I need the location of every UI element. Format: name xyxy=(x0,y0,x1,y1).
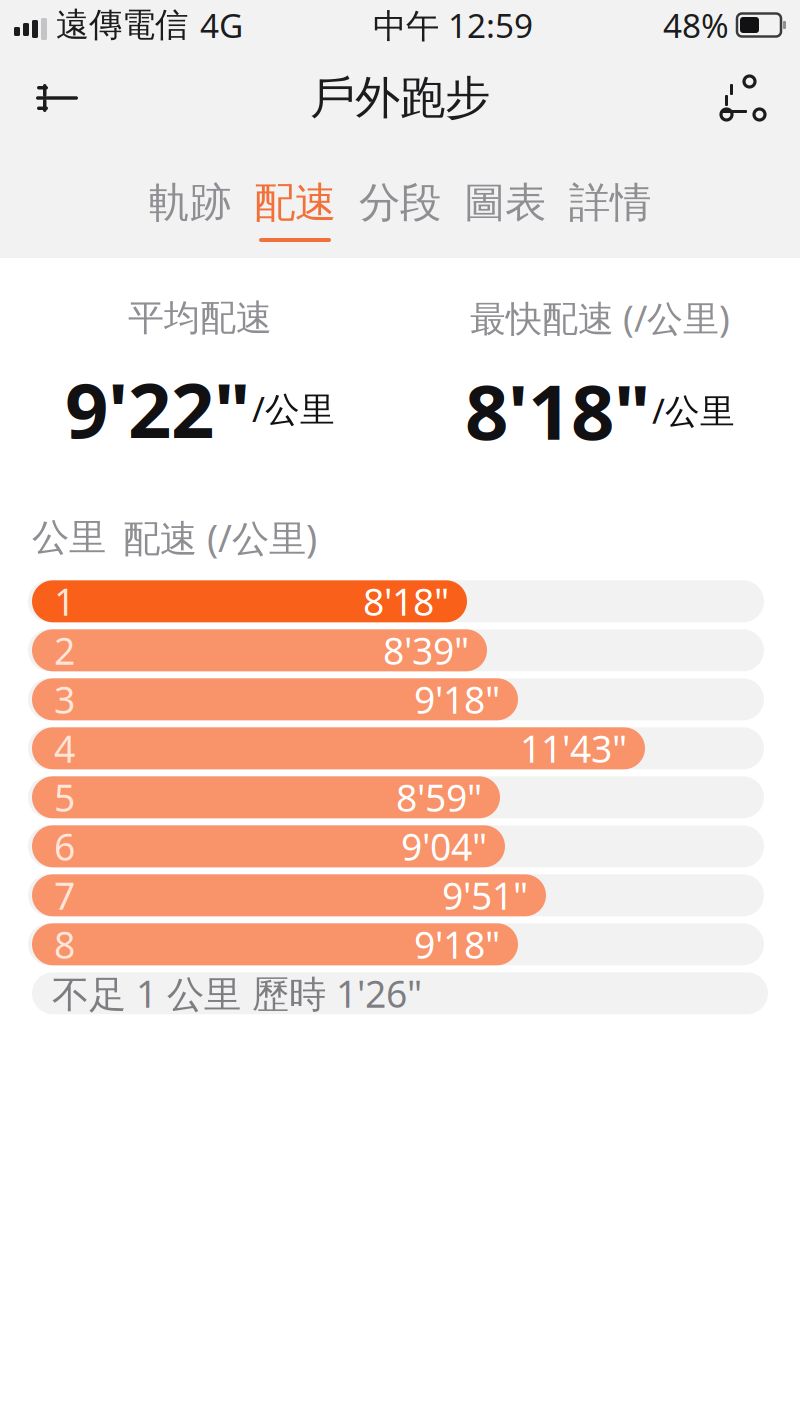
staticText: 中午 12:59 xyxy=(373,3,533,47)
staticText: 3 xyxy=(54,674,75,724)
staticText: 配速 xyxy=(254,177,336,228)
button[interactable]: 軌跡 xyxy=(137,146,242,258)
staticText: 軌跡 xyxy=(149,177,231,228)
staticText: 11'43" xyxy=(520,723,627,773)
staticText: 最快配速 (/公里) xyxy=(470,294,730,342)
button[interactable]: 返回 xyxy=(14,62,100,134)
staticText: 8'18" xyxy=(465,360,650,461)
staticText: 4G xyxy=(200,3,243,47)
staticText: 8'18" xyxy=(363,576,449,626)
staticText: 分段 xyxy=(359,177,441,228)
staticText: 1 xyxy=(54,576,75,626)
staticText: 9'04" xyxy=(401,821,487,871)
staticText: 不足 1 公里 歷時 1'26" xyxy=(52,968,422,1018)
staticText: 公里 xyxy=(32,515,106,560)
staticText: 6 xyxy=(54,821,75,871)
staticText: 9'51" xyxy=(442,870,528,920)
button[interactable]: 詳情 xyxy=(557,146,662,258)
staticText: 5 xyxy=(54,772,75,822)
staticText: 2 xyxy=(54,625,75,675)
button[interactable]: 分享 xyxy=(700,62,786,134)
button[interactable]: 配速 xyxy=(242,146,347,258)
staticText: 8 xyxy=(54,919,75,969)
staticText: 8'39" xyxy=(383,625,469,675)
staticText: 48% xyxy=(663,3,729,47)
staticText: 圖表 xyxy=(464,177,546,228)
staticText: /公里 xyxy=(252,385,335,431)
button[interactable]: 分段 xyxy=(347,146,452,258)
staticText: 9'22" xyxy=(65,358,250,459)
staticText: 平均配速 xyxy=(128,296,272,340)
staticText: 9'18" xyxy=(414,919,500,969)
staticText: 7 xyxy=(54,870,75,920)
staticText: 4 xyxy=(54,723,75,773)
staticText: 詳情 xyxy=(569,177,651,228)
staticText: /公里 xyxy=(652,387,735,433)
staticText: 遠傳電信 xyxy=(56,4,188,45)
staticText: 配速 (/公里) xyxy=(123,513,317,562)
staticText: 9'18" xyxy=(414,674,500,724)
staticText: 8'59" xyxy=(396,772,482,822)
button[interactable]: 圖表 xyxy=(452,146,557,258)
staticText: 戶外跑步 xyxy=(310,70,490,126)
